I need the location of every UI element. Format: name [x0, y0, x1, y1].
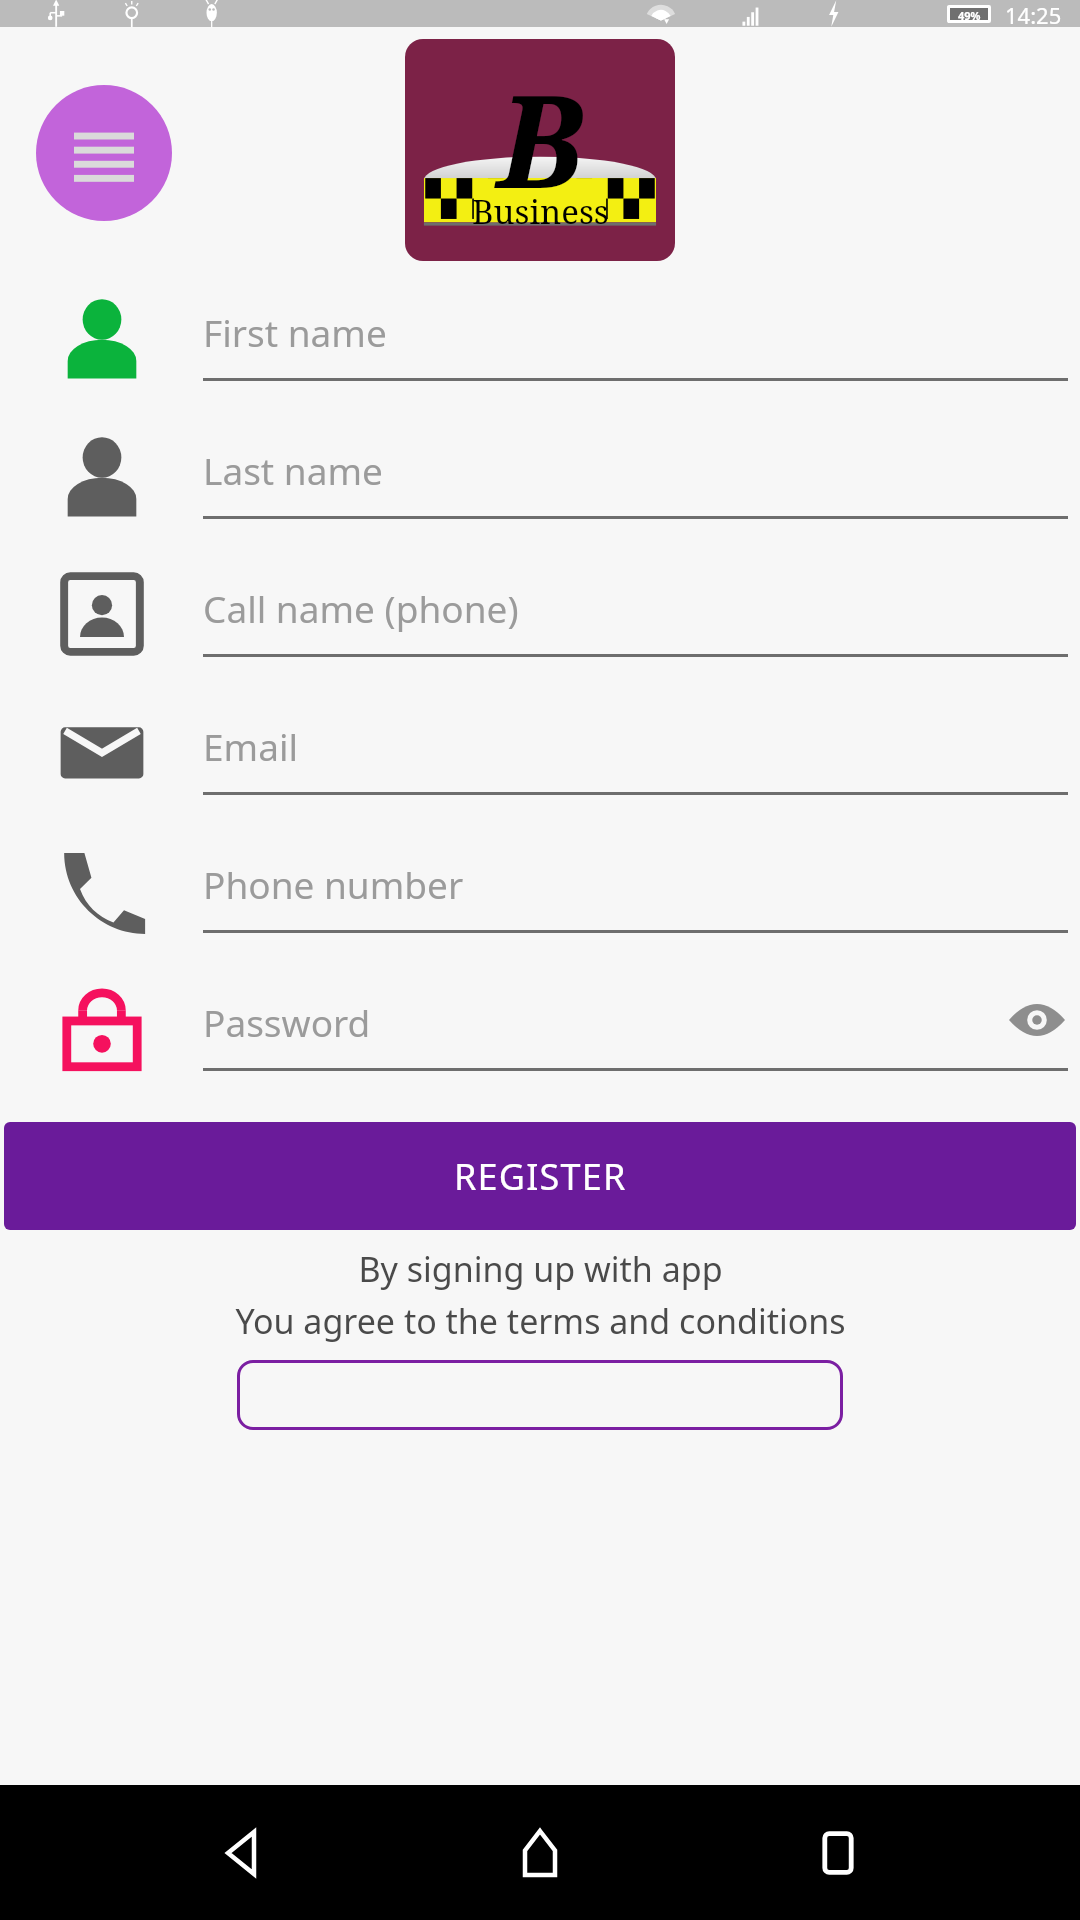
- staticText: Phone number: [203, 859, 464, 909]
- button[interactable]: [237, 1360, 843, 1430]
- staticText: 49%: [958, 8, 981, 20]
- button[interactable]: Recent apps: [783, 1798, 893, 1908]
- button[interactable]: Call name (phone): [0, 545, 1080, 683]
- button[interactable]: Back: [188, 1798, 298, 1908]
- button[interactable]: Last name: [0, 407, 1080, 545]
- button[interactable]: Open navigation menu: [36, 85, 172, 221]
- staticText: Business: [472, 189, 609, 234]
- button[interactable]: Show password: [1006, 989, 1068, 1051]
- staticText: By signing up with app: [358, 1246, 723, 1292]
- button[interactable]: Email: [0, 683, 1080, 821]
- staticText: Password: [203, 997, 371, 1047]
- staticText: REGISTER: [454, 1152, 627, 1201]
- staticText: First name: [203, 307, 387, 357]
- staticText: Last name: [203, 445, 383, 495]
- button[interactable]: Home: [485, 1798, 595, 1908]
- button[interactable]: Password: [0, 959, 1080, 1097]
- button[interactable]: REGISTER: [4, 1122, 1076, 1230]
- staticText: You agree to the terms and conditions: [235, 1298, 846, 1344]
- button[interactable]: First name: [0, 269, 1080, 407]
- staticText: Email: [203, 721, 299, 771]
- staticText: Call name (phone): [203, 583, 519, 633]
- button[interactable]: Phone number: [0, 821, 1080, 959]
- staticText: 14:25: [1005, 0, 1062, 27]
- staticText: B: [497, 51, 584, 225]
